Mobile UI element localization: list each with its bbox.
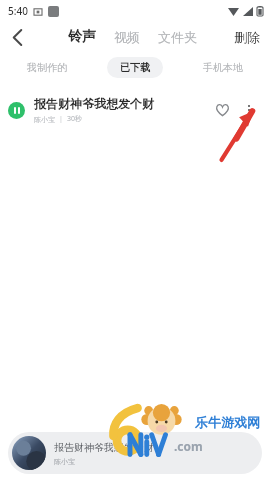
button[interactable]: More options [236, 97, 262, 123]
staticText: 报告财神爷我想发个财 [54, 441, 154, 454]
staticText: .com [174, 438, 203, 454]
staticText: 陈小宝 [34, 115, 55, 124]
staticText: 文件夹 [158, 29, 197, 45]
button[interactable]: Favorite [208, 96, 236, 124]
staticText: 30秒 [67, 114, 83, 124]
button[interactable]: 视频 [112, 25, 142, 49]
staticText: 已下载 [120, 61, 150, 74]
staticText: | [59, 114, 63, 124]
staticText: 我制作的 [27, 61, 67, 74]
staticText: 报告财神爷我想发个财 [34, 96, 154, 111]
button[interactable]: 删除 [224, 25, 270, 49]
button[interactable]: 手机本地 [190, 57, 256, 78]
staticText: 陈小宝 [54, 457, 75, 466]
staticText: 手机本地 [203, 61, 243, 74]
staticText: 乐牛游戏网 [195, 414, 260, 430]
button[interactable]: Back [0, 22, 34, 52]
staticText: 删除 [234, 29, 260, 45]
staticText: 铃声 [68, 28, 96, 46]
button[interactable]: Pause [8, 102, 25, 119]
button[interactable]: 我制作的 [14, 57, 80, 78]
staticText: 视频 [114, 29, 140, 45]
button[interactable]: 已下载 [107, 57, 163, 78]
button[interactable]: 报告财神爷我想发个财 [8, 432, 262, 474]
button[interactable]: Pause [0, 90, 270, 130]
staticText: 5:40 [8, 4, 28, 18]
button[interactable]: 铃声 [66, 24, 98, 50]
button[interactable]: 文件夹 [156, 25, 199, 49]
